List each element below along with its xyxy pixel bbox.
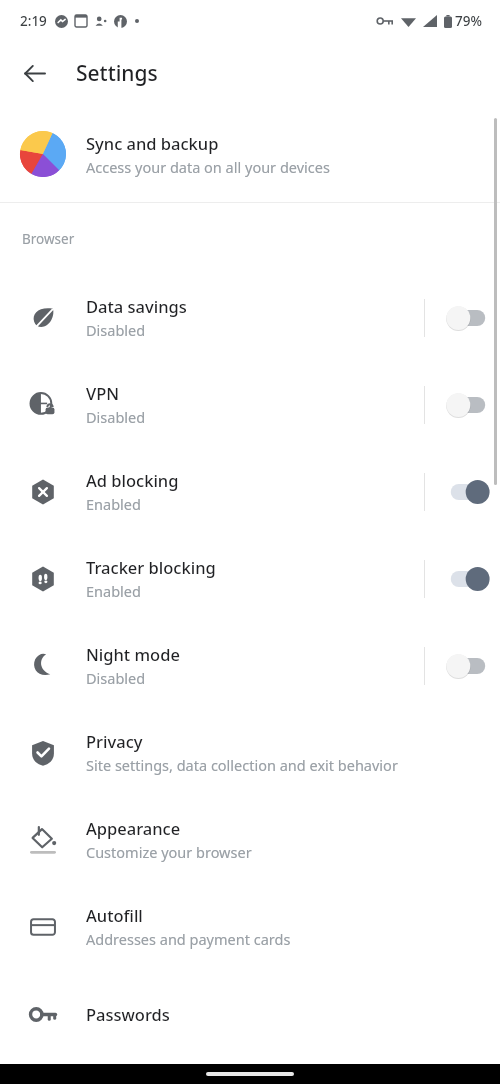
button[interactable]: VPN <box>0 361 500 448</box>
staticText: Night mode <box>86 643 180 665</box>
staticText: Tracker blocking <box>86 556 216 578</box>
button[interactable] <box>412 361 500 448</box>
button[interactable] <box>412 535 500 622</box>
staticText: Settings <box>76 59 158 88</box>
staticText: Addresses and payment cards <box>86 929 291 949</box>
staticText: Privacy <box>86 730 143 752</box>
staticText: Disabled <box>86 407 146 427</box>
button[interactable]: Appearance <box>0 796 500 883</box>
staticText: 79% <box>455 12 482 30</box>
button[interactable]: Privacy <box>0 709 500 796</box>
button[interactable]: Night mode <box>0 622 500 709</box>
button[interactable]: Passwords <box>0 970 500 1057</box>
staticText: Disabled <box>86 668 146 688</box>
button[interactable]: Data savings <box>0 274 500 361</box>
staticText: 2:19 <box>20 12 47 30</box>
staticText: Appearance <box>86 817 181 839</box>
button[interactable]: Back <box>10 49 58 97</box>
staticText: Data savings <box>86 295 187 317</box>
staticText: Access your data on all your devices <box>86 157 330 177</box>
button[interactable]: Ad blocking <box>0 448 500 535</box>
staticText: Ad blocking <box>86 469 179 491</box>
button[interactable] <box>412 622 500 709</box>
staticText: Site settings, data collection and exit … <box>86 755 398 775</box>
staticText: Disabled <box>86 320 146 340</box>
staticText: Customize your browser <box>86 842 252 862</box>
button[interactable]: Sync and backup <box>0 116 500 192</box>
staticText: Passwords <box>86 1003 170 1025</box>
button[interactable] <box>412 274 500 361</box>
staticText: Enabled <box>86 581 141 601</box>
staticText: Sync and backup <box>86 132 219 154</box>
button[interactable] <box>412 448 500 535</box>
staticText: Enabled <box>86 494 141 514</box>
button[interactable]: Tracker blocking <box>0 535 500 622</box>
staticText: VPN <box>86 382 120 404</box>
button[interactable]: Autofill <box>0 883 500 970</box>
staticText: Browser <box>22 230 75 248</box>
staticText: Autofill <box>86 904 143 926</box>
